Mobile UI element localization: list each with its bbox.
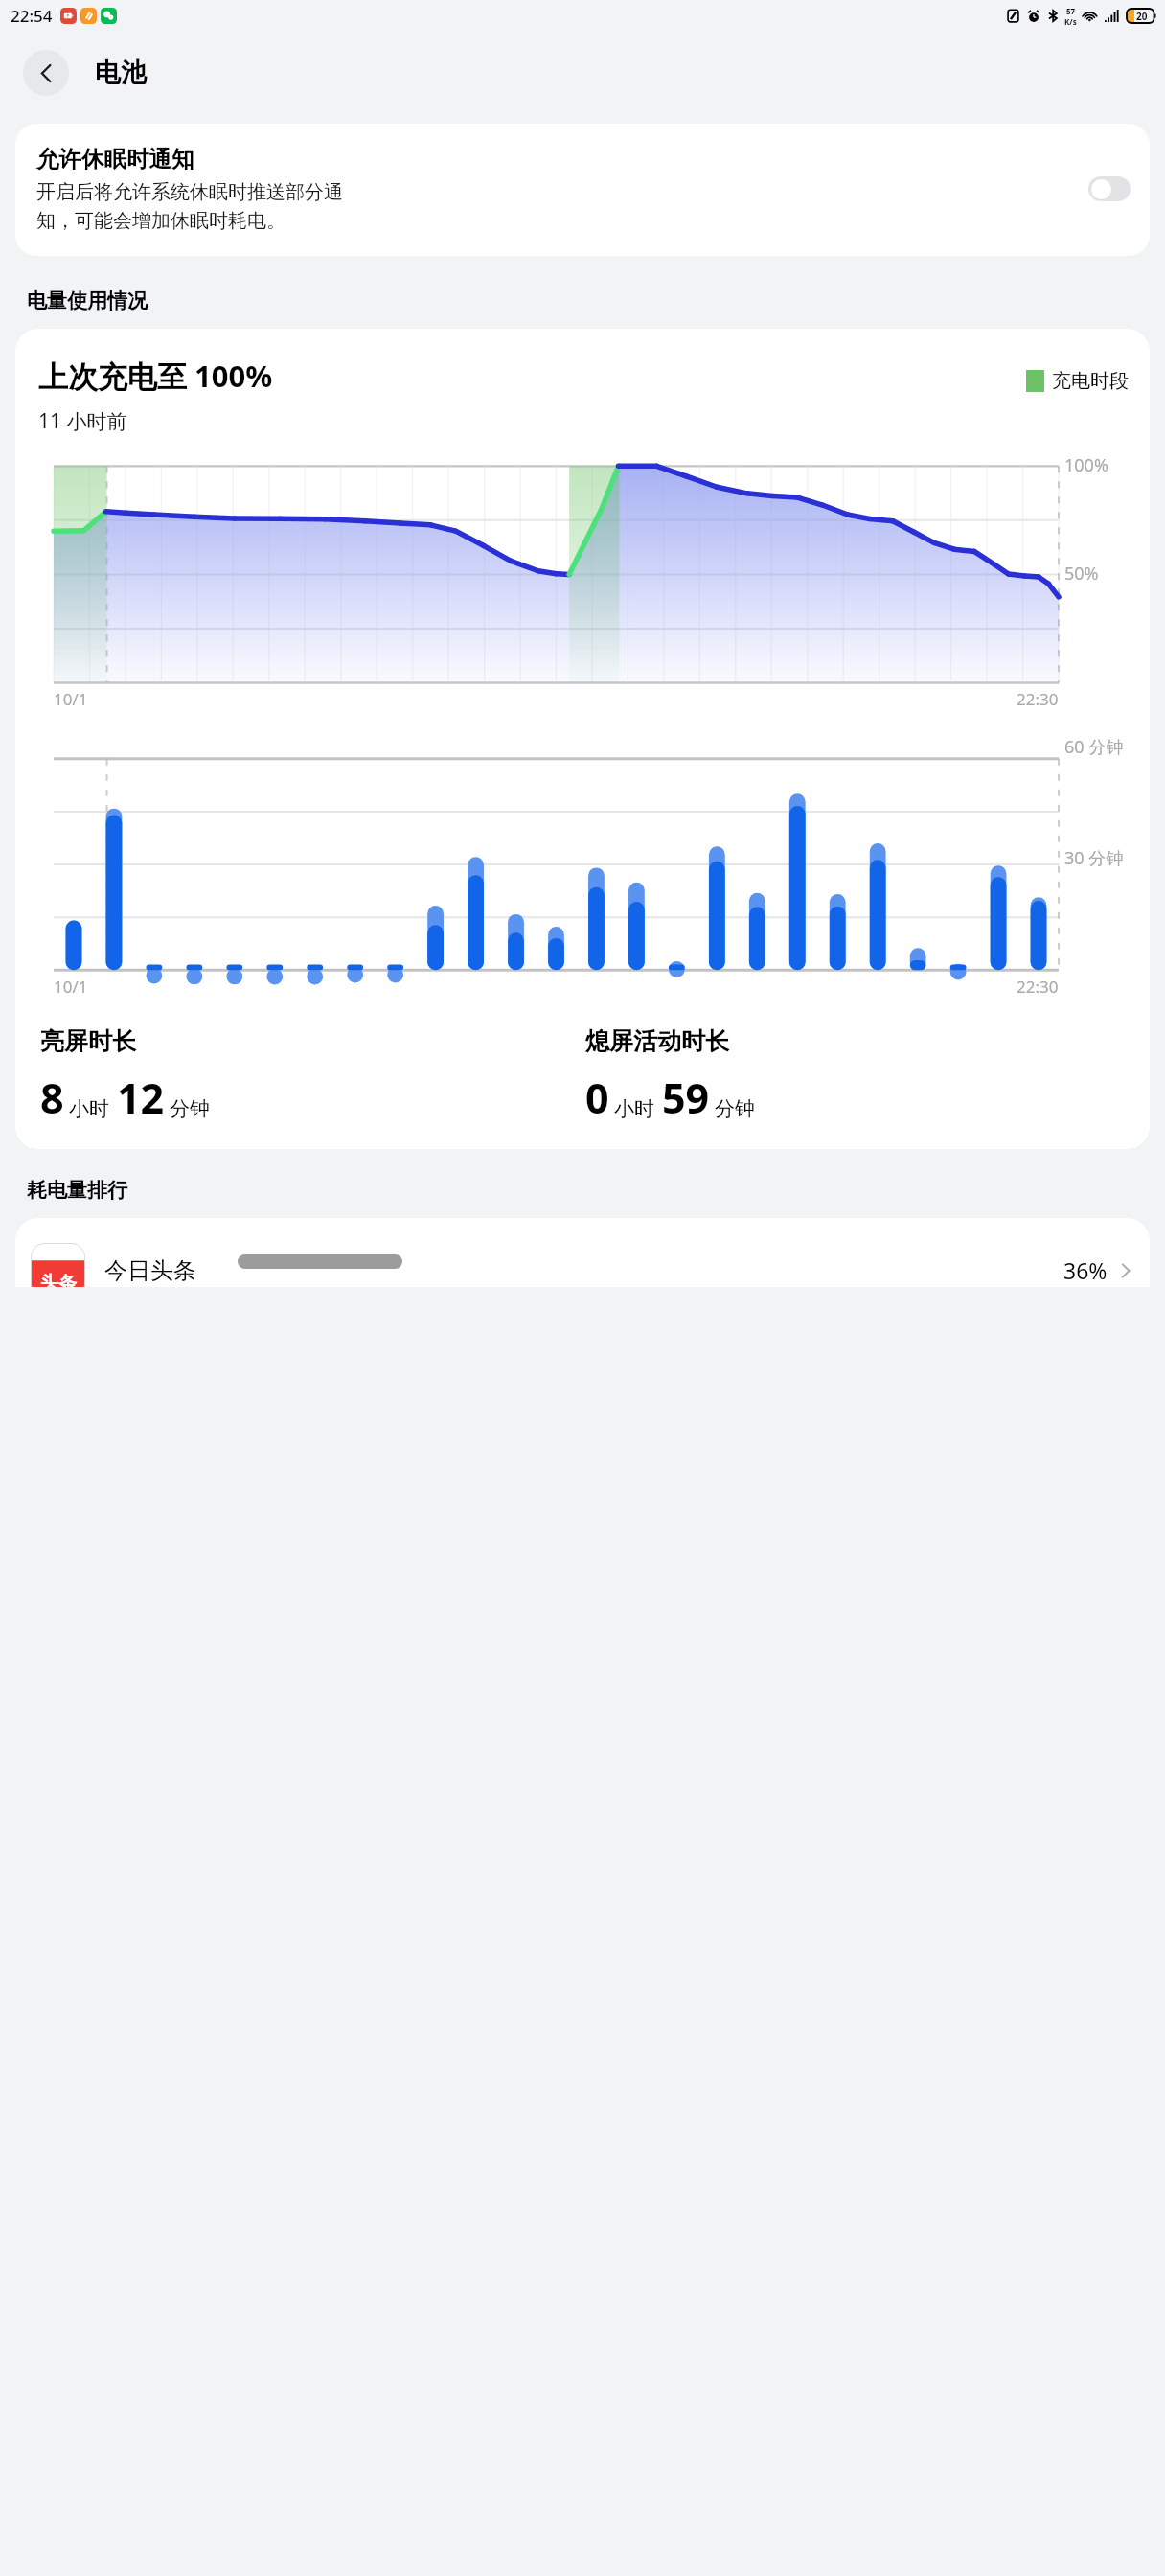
staticText: 100% <box>1064 453 1150 477</box>
staticText: 10/1 <box>54 976 88 998</box>
staticText: 头条 <box>40 1272 77 1287</box>
staticText: 耗电量排行 <box>27 1178 127 1203</box>
staticText: K/s <box>1064 16 1077 27</box>
staticText: 8 <box>40 1069 64 1126</box>
staticText: 20 <box>1136 10 1148 23</box>
staticText: 小时 <box>614 1096 654 1121</box>
staticText: 熄屏活动时长 <box>585 1026 729 1056</box>
button[interactable]: 上次充电至 100% <box>15 329 1150 1149</box>
button[interactable]: 返回 <box>23 50 69 96</box>
staticText: 小时 <box>69 1096 109 1121</box>
staticText: 11 小时前 <box>38 407 127 435</box>
button[interactable]: 允许休眠时通知 <box>15 124 1150 256</box>
staticText: 开启后将允许系统休眠时推送部分通 知，可能会增加休眠时耗电。 <box>36 180 343 233</box>
staticText: 电池 <box>95 57 147 89</box>
staticText: 电量使用情况 <box>27 288 148 313</box>
staticText: 10/1 <box>54 688 88 710</box>
staticText: 50% <box>1064 562 1150 586</box>
staticText: 上次充电至 100% <box>38 356 273 396</box>
staticText: 亮屏时长 <box>40 1026 136 1056</box>
staticText: 57 <box>1066 6 1076 16</box>
staticText: 60 分钟 <box>1064 735 1150 759</box>
staticText: 分钟 <box>715 1096 755 1121</box>
staticText: 22:54 <box>11 5 53 27</box>
staticText: 分钟 <box>170 1096 210 1121</box>
staticText: 12 <box>117 1069 165 1126</box>
staticText: 充电时段 <box>1052 369 1129 393</box>
staticText: 59 <box>662 1069 710 1126</box>
staticText: 22:30 <box>1017 976 1059 998</box>
staticText: 今日头条 <box>104 1256 196 1285</box>
staticText: 30 分钟 <box>1064 846 1150 870</box>
button[interactable]: 允许休眠时通知开关 <box>1088 176 1131 201</box>
staticText: 0 <box>585 1069 609 1126</box>
staticText: 22:30 <box>1017 688 1059 710</box>
staticText: 允许休眠时通知 <box>36 145 194 173</box>
staticText: 36% <box>1063 1255 1108 1285</box>
button[interactable]: 头条 <box>15 1218 1150 1287</box>
